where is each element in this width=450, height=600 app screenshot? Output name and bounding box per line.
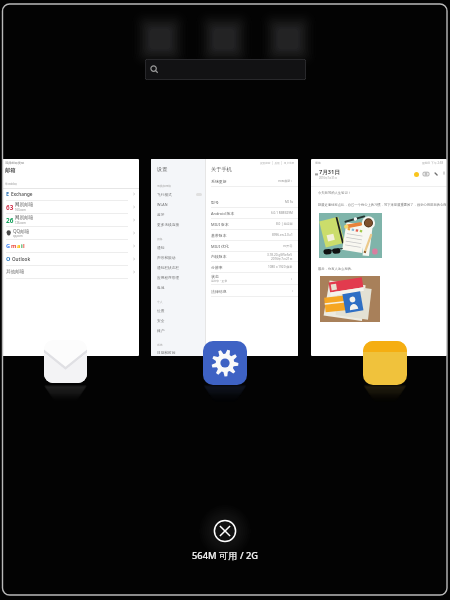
staticText: 飞行模式 bbox=[157, 192, 172, 197]
staticText: 状态 bbox=[211, 274, 219, 279]
staticText: 通知栏状态栏 bbox=[157, 265, 180, 270]
button[interactable]: 通知栏状态栏 bbox=[157, 262, 202, 272]
staticText: 邮箱 bbox=[5, 167, 16, 174]
staticText: 8996.en.2.0.c1 bbox=[272, 233, 293, 237]
staticText: 便签 bbox=[315, 161, 321, 165]
staticText: 运行中 · 正常 bbox=[211, 279, 228, 283]
button[interactable]: Search bbox=[145, 59, 306, 80]
staticText: 网易邮箱 bbox=[15, 215, 34, 221]
button[interactable]: 更多无线连接 bbox=[157, 219, 202, 229]
button[interactable]: 便签 bbox=[311, 159, 447, 356]
staticText: 2016年7月31日 bbox=[319, 176, 338, 180]
staticText: 分辨率 bbox=[211, 265, 223, 270]
staticText: 其他邮箱 bbox=[6, 269, 25, 275]
button[interactable]: Email bbox=[44, 340, 87, 383]
staticText: › bbox=[291, 276, 293, 281]
staticText: G bbox=[6, 242, 11, 250]
staticText: 内核版本 bbox=[211, 254, 227, 259]
button[interactable]: 飞行模式 bbox=[157, 189, 202, 199]
staticText: 安全 bbox=[157, 318, 165, 323]
staticText: WLAN bbox=[157, 202, 168, 207]
staticText: m bbox=[11, 242, 17, 250]
staticText: 无线和网络 bbox=[157, 184, 171, 188]
button[interactable]: 日期和时间 bbox=[157, 348, 202, 356]
staticText: Outlook bbox=[12, 256, 31, 262]
button[interactable]: Notes bbox=[363, 341, 407, 385]
button[interactable]: Settings bbox=[203, 341, 247, 385]
staticText: qq.com bbox=[13, 234, 23, 238]
staticText: O bbox=[6, 255, 11, 263]
staticText: 账户 bbox=[157, 328, 165, 333]
button[interactable]: 通知 bbox=[157, 242, 202, 252]
staticText: i bbox=[21, 242, 23, 250]
staticText: 通知 bbox=[157, 245, 165, 250]
staticText: › bbox=[292, 289, 293, 293]
staticText: 已是最新 › bbox=[278, 179, 293, 183]
staticText: MIUI 版本 bbox=[211, 222, 229, 227]
button[interactable]: WLAN bbox=[157, 199, 202, 209]
button[interactable]: 选择邮箱类型 bbox=[2, 159, 139, 356]
staticText: 8.0 | 稳定版 bbox=[276, 222, 293, 226]
staticText: 网易邮箱 bbox=[15, 202, 34, 208]
button[interactable]: Edit bbox=[432, 170, 440, 178]
staticText: MI 5s bbox=[285, 200, 293, 204]
button[interactable]: 声音和振动 bbox=[157, 252, 202, 262]
staticText: 26 bbox=[6, 216, 14, 225]
staticText: 个人 bbox=[157, 300, 163, 304]
button[interactable]: 电池 bbox=[157, 282, 202, 292]
staticText: Exchange bbox=[11, 191, 33, 197]
button[interactable]: Camera bbox=[422, 170, 430, 178]
button[interactable]: 位置 bbox=[157, 305, 202, 315]
staticText: l bbox=[23, 242, 25, 250]
staticText: 设置 bbox=[157, 166, 168, 173]
staticText: 564M 可用 / 2G bbox=[192, 549, 258, 562]
staticText: 系统 bbox=[157, 343, 163, 347]
button[interactable]: Close all bbox=[211, 517, 239, 545]
staticText: 163.com bbox=[15, 208, 26, 212]
staticText: 型号 bbox=[211, 200, 219, 205]
staticText: 2016年7月21日 bbox=[271, 257, 293, 261]
staticText: 1080 x 1920 像素 bbox=[268, 265, 293, 269]
staticText: 63 bbox=[6, 203, 14, 212]
staticText: 今天我写的人生笔记！ bbox=[318, 191, 351, 195]
button[interactable]: 账户 bbox=[157, 325, 202, 335]
button[interactable]: 蓝牙 bbox=[157, 209, 202, 219]
button[interactable]: 安全 bbox=[157, 315, 202, 325]
staticText: 设备 bbox=[157, 237, 163, 241]
staticText: 声音和振动 bbox=[157, 255, 176, 260]
staticText: a bbox=[17, 242, 21, 250]
staticText: 基带版本 bbox=[211, 233, 227, 238]
staticText: 关于手机 bbox=[211, 166, 232, 173]
button[interactable]: 应用程序管理 bbox=[157, 272, 202, 282]
staticText: 更多无线连接 bbox=[157, 222, 180, 227]
staticText: 已开启 bbox=[283, 244, 293, 248]
staticText: 应用程序管理 bbox=[157, 275, 180, 280]
staticText: 选择邮箱类型 bbox=[5, 161, 25, 165]
button[interactable]: Highlight bbox=[412, 170, 420, 178]
staticText: 法律信息 bbox=[211, 289, 227, 294]
staticText: 蓝牙 bbox=[157, 212, 165, 217]
staticText: 那最近事情有点乱，自己一个例心上的习惯，写下来是最重要的了，很学心得是我的心得。 bbox=[318, 203, 447, 207]
staticText: 6.0.1 MMB29M bbox=[271, 211, 293, 215]
staticText: 3.18.20-g5f5e5e5 bbox=[267, 253, 293, 257]
staticText: E bbox=[6, 190, 10, 198]
staticText: Android 版本 bbox=[211, 211, 235, 216]
staticText: QQ邮箱 bbox=[13, 228, 30, 234]
staticText: 7月31日 bbox=[319, 168, 340, 176]
staticText: MIUI 优化 bbox=[211, 244, 229, 249]
staticText: 电池 bbox=[157, 285, 165, 290]
staticText: 日期和时间 bbox=[157, 350, 176, 355]
staticText: 系统更新 bbox=[211, 179, 227, 184]
button[interactable]: 设置 bbox=[151, 159, 298, 356]
staticText: 126.com bbox=[15, 221, 26, 225]
staticText: 最后，你有人这么想的。 bbox=[318, 267, 355, 271]
staticText: 常用邮箱 bbox=[5, 182, 17, 186]
staticText: 设置搜索 | 反馈 | 用户手册 bbox=[260, 161, 295, 165]
button[interactable]: More options bbox=[441, 170, 447, 176]
staticText: 星期日 下午 2:58 bbox=[422, 161, 443, 165]
staticText: 位置 bbox=[157, 308, 165, 313]
